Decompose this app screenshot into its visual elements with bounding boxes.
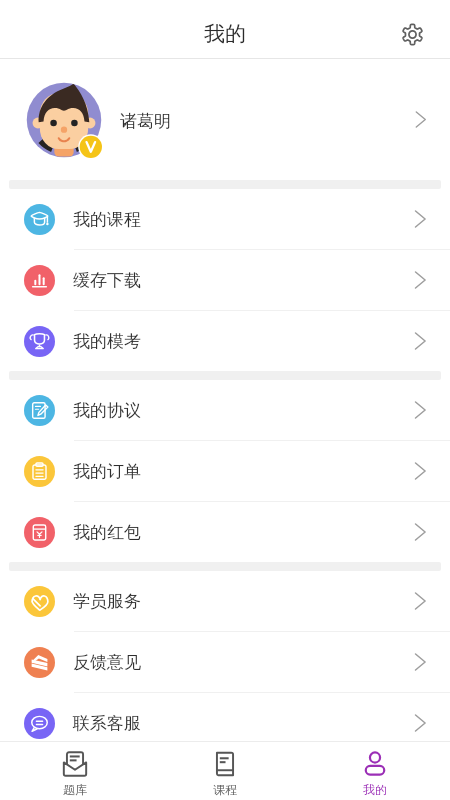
- staticText: 缓存下载: [73, 270, 141, 291]
- staticText: 我的订单: [73, 461, 141, 482]
- staticText: 联系客服: [73, 713, 141, 734]
- staticText: 我的课程: [73, 209, 141, 230]
- button[interactable]: 我的模考: [0, 311, 450, 371]
- staticText: 我的红包: [73, 522, 141, 543]
- staticText: 反馈意见: [73, 652, 141, 673]
- button[interactable]: 我的课程: [0, 189, 450, 249]
- button[interactable]: Settings: [395, 17, 429, 51]
- button[interactable]: 我的订单: [0, 441, 450, 501]
- button[interactable]: 缓存下载: [0, 250, 450, 310]
- staticText: 学员服务: [73, 591, 141, 612]
- staticText: 我的: [204, 21, 246, 47]
- staticText: 我的: [363, 782, 387, 797]
- staticText: 题库: [63, 782, 87, 797]
- button[interactable]: 题库: [0, 742, 150, 800]
- button[interactable]: 联系客服: [0, 693, 450, 753]
- staticText: 课程: [213, 782, 237, 797]
- button[interactable]: 课程: [150, 742, 300, 800]
- button[interactable]: 我的红包: [0, 502, 450, 562]
- staticText: 我的协议: [73, 400, 141, 421]
- button[interactable]: 我的: [300, 742, 450, 800]
- button[interactable]: 诸葛明: [0, 59, 450, 180]
- button[interactable]: 反馈意见: [0, 632, 450, 692]
- button[interactable]: 学员服务: [0, 571, 450, 631]
- button[interactable]: 我的协议: [0, 380, 450, 440]
- staticText: 我的模考: [73, 331, 141, 352]
- staticText: 诸葛明: [120, 111, 171, 132]
